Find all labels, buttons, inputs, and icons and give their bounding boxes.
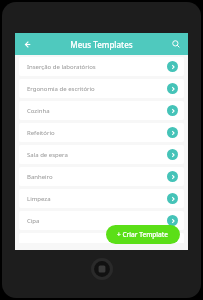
staticText: Cipa [27,217,40,225]
button[interactable]: Ergonomia de escritório [19,79,184,98]
staticText: Limpeza [27,195,51,203]
button[interactable]: Sala de espera [19,145,184,164]
button[interactable]: Search [169,37,183,51]
button[interactable]: + Criar Template [106,225,180,244]
button[interactable]: Inserção de laboratórios [19,57,184,76]
staticText: Refeitório [27,129,55,137]
staticText: Cozinha [27,107,50,115]
button[interactable]: Back [20,37,34,51]
button[interactable]: Refeitório [19,123,184,142]
button[interactable]: Cipa [19,211,184,230]
staticText: Inserção de laboratórios [27,63,96,71]
staticText: + Criar Template [117,230,169,239]
staticText: Meus Templates [70,39,133,50]
button[interactable] [19,233,184,243]
staticText: Sala de espera [27,151,68,159]
button[interactable]: Home [91,258,113,280]
staticText: Ergonomia de escritório [27,85,95,93]
button[interactable]: Limpeza [19,189,184,208]
staticText: Banheiro [27,173,53,181]
button[interactable]: Cozinha [19,101,184,120]
button[interactable]: Banheiro [19,167,184,186]
